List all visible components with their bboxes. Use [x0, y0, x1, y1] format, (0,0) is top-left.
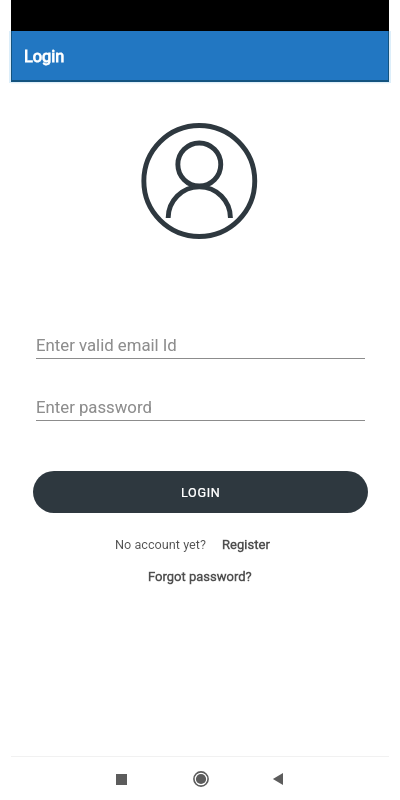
staticText: No account yet?	[115, 537, 206, 552]
button[interactable]: Forgot password?	[148, 569, 252, 584]
button[interactable]: LOGIN	[33, 471, 368, 513]
staticText: Enter password	[36, 397, 152, 417]
staticText: Enter valid email Id	[36, 335, 177, 355]
staticText: Forgot password?	[148, 569, 252, 584]
button[interactable]: Home	[179, 757, 223, 800]
button[interactable]: Register	[222, 537, 270, 552]
button[interactable]: Recent apps	[99, 757, 143, 800]
button[interactable]: Back	[256, 757, 300, 800]
staticText: Login	[24, 47, 65, 66]
staticText: Register	[222, 537, 270, 552]
staticText: LOGIN	[181, 485, 221, 500]
